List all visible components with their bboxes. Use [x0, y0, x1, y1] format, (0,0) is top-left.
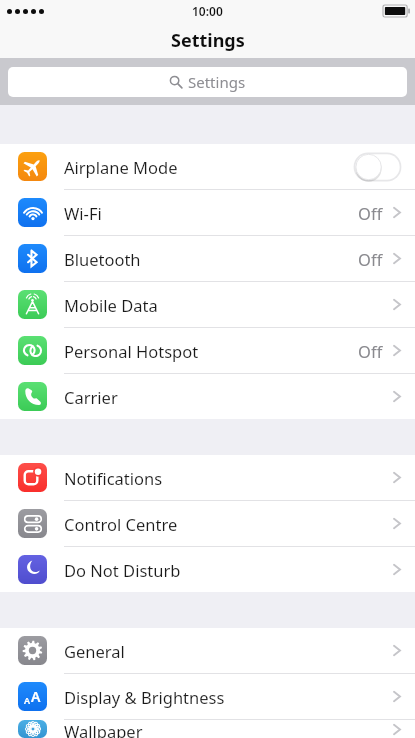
- staticText: Settings: [188, 72, 246, 92]
- button[interactable]: Do Not Disturb: [0, 547, 415, 592]
- staticText: Airplane Mode: [64, 156, 353, 178]
- staticText: A: [31, 687, 41, 706]
- button[interactable]: Airplane Mode: [0, 144, 415, 190]
- staticText: Control Centre: [64, 513, 392, 535]
- staticText: Display & Brightness: [64, 686, 392, 708]
- button[interactable]: Wallpaper: [0, 720, 415, 738]
- button[interactable]: Search Settings: [8, 67, 407, 97]
- staticText: Carrier: [64, 386, 392, 408]
- button[interactable]: Personal Hotspot: [0, 328, 415, 374]
- button[interactable]: Bluetooth: [0, 236, 415, 282]
- staticText: 10:00: [192, 3, 223, 19]
- staticText: Wi-Fi: [64, 202, 358, 224]
- staticText: Off: [358, 202, 383, 224]
- staticText: Notifications: [64, 467, 392, 489]
- button[interactable]: Mobile Data: [0, 282, 415, 328]
- staticText: Off: [358, 340, 383, 362]
- staticText: Personal Hotspot: [64, 340, 358, 362]
- button[interactable]: Carrier: [0, 374, 415, 419]
- button[interactable]: Wi-Fi: [0, 190, 415, 236]
- staticText: General: [64, 640, 392, 662]
- staticText: Settings: [171, 28, 245, 53]
- staticText: Mobile Data: [64, 294, 392, 316]
- button[interactable]: Notifications: [0, 455, 415, 501]
- staticText: Off: [358, 248, 383, 270]
- staticText: Bluetooth: [64, 248, 358, 270]
- staticText: Wallpaper: [64, 720, 392, 738]
- staticText: A: [24, 694, 31, 706]
- button[interactable]: General: [0, 628, 415, 674]
- staticText: Do Not Disturb: [64, 559, 392, 581]
- button[interactable]: Control Centre: [0, 501, 415, 547]
- button[interactable]: A: [0, 674, 415, 720]
